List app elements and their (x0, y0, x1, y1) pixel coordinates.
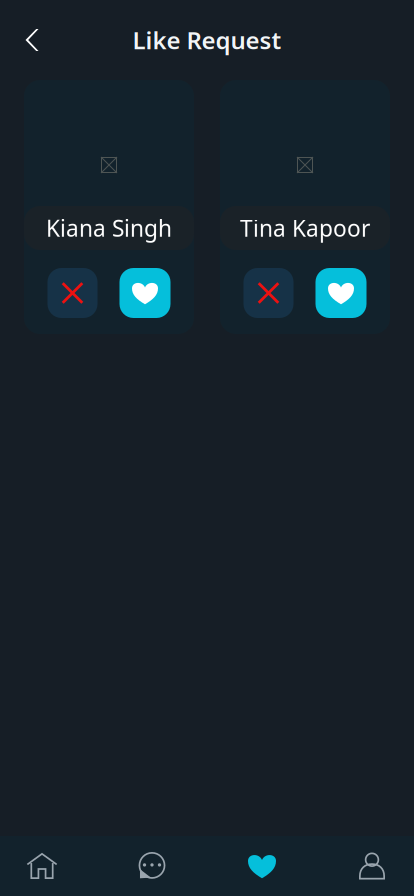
image (297, 157, 313, 173)
button[interactable]: Home (12, 836, 72, 896)
image (101, 157, 117, 173)
button[interactable]: Accept (119, 268, 170, 318)
staticText: Tina Kapoor (240, 213, 370, 243)
button[interactable]: Decline (243, 268, 293, 318)
button[interactable]: Accept (315, 268, 366, 318)
button[interactable]: Decline (47, 268, 97, 318)
staticText: Like Request (132, 24, 281, 56)
staticText: Kiana Singh (46, 213, 172, 243)
button[interactable]: Likes (232, 836, 292, 896)
button[interactable]: Profile (342, 836, 402, 896)
button[interactable]: Back (10, 18, 54, 62)
button[interactable]: Messages (122, 836, 182, 896)
